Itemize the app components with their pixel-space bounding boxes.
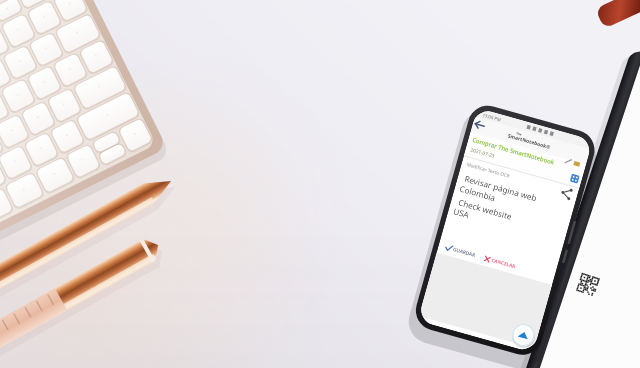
button[interactable]: Desk photo with keyboard, pens and phone [0, 0, 640, 368]
